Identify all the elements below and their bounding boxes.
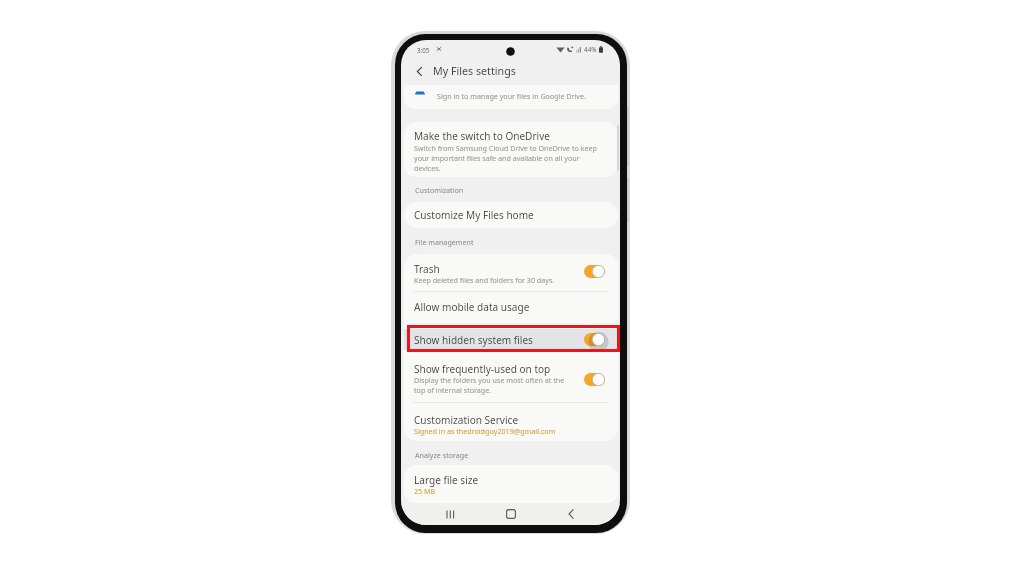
staticText: Trash bbox=[414, 262, 440, 276]
staticText: 25 MB bbox=[414, 486, 436, 496]
button[interactable]: Show hidden system files bbox=[404, 329, 618, 350]
staticText: Customization Service bbox=[414, 413, 519, 427]
button[interactable]: Allow mobile data usage bbox=[404, 293, 618, 321]
staticText: Make the switch to OneDrive bbox=[414, 129, 550, 143]
staticText: Keep deleted files and folders for 30 da… bbox=[414, 275, 555, 285]
staticText: Switch from Samsung Cloud Drive to OneDr… bbox=[414, 143, 599, 173]
button[interactable]: Back bbox=[562, 505, 580, 523]
button[interactable]: Sign in to manage your files in Google D… bbox=[404, 85, 618, 109]
button[interactable]: Customization Service bbox=[404, 404, 618, 441]
button[interactable]: Toggle bbox=[584, 333, 605, 346]
button[interactable]: Home bbox=[502, 505, 520, 523]
button[interactable]: Show frequently-used on top bbox=[404, 352, 618, 402]
staticText: Large file size bbox=[414, 473, 479, 487]
button[interactable]: Customize My Files home bbox=[404, 202, 618, 228]
button[interactable]: Recents bbox=[441, 505, 459, 523]
staticText: 44% bbox=[584, 45, 597, 54]
staticText: Customize My Files home bbox=[414, 208, 534, 222]
staticText: Show hidden system files bbox=[414, 333, 533, 347]
button[interactable]: Toggle bbox=[584, 373, 605, 386]
button[interactable]: Back bbox=[411, 63, 427, 79]
button[interactable]: Make the switch to OneDrive bbox=[404, 122, 618, 177]
staticText: Customization bbox=[415, 185, 464, 195]
button[interactable]: Trash bbox=[404, 254, 618, 292]
button[interactable]: Toggle bbox=[584, 265, 605, 278]
staticText: 3:05 bbox=[417, 46, 430, 54]
staticText: File management bbox=[415, 237, 474, 247]
staticText: Analyze storage bbox=[415, 450, 469, 460]
staticText: Show frequently-used on top bbox=[414, 362, 551, 376]
staticText: Signed in as thedroidguy2019@gmail.com bbox=[414, 426, 556, 436]
staticText: Allow mobile data usage bbox=[414, 300, 530, 314]
button[interactable]: Large file size bbox=[404, 465, 618, 504]
staticText: Sign in to manage your files in Google D… bbox=[437, 91, 586, 101]
staticText: Display the folders you use most often a… bbox=[414, 375, 571, 395]
staticText: My Files settings bbox=[433, 64, 516, 79]
